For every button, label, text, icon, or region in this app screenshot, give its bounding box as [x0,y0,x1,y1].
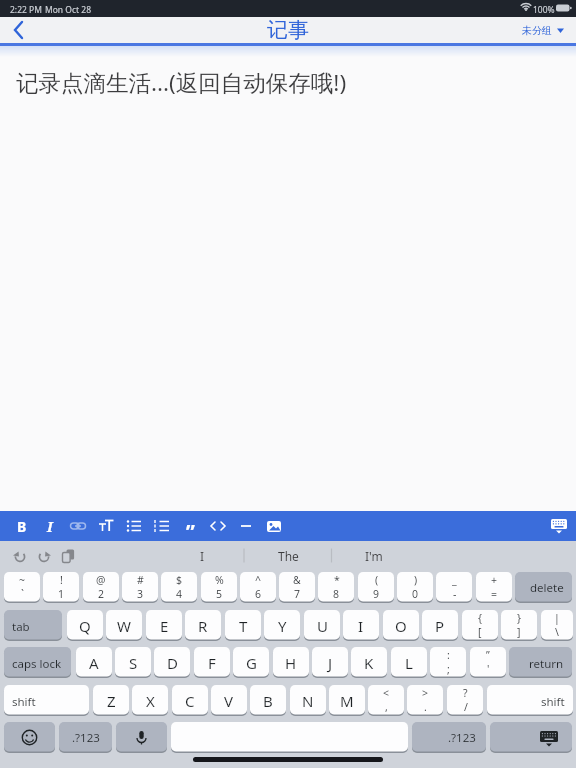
button[interactable]: G [233,647,269,678]
button[interactable] [205,513,231,539]
button[interactable]: B [9,513,35,539]
staticText: .?123 [448,730,476,746]
button[interactable]: & [279,572,315,603]
staticText: ^ [255,573,262,587]
button[interactable]: | [541,610,573,641]
button[interactable]: B [250,685,286,716]
staticText: Z [107,691,116,711]
button[interactable]: ! [43,572,79,603]
staticText: T [239,616,248,636]
staticText: L [405,653,413,673]
staticText: I [358,616,364,636]
button[interactable] [93,513,119,539]
button[interactable] [171,722,408,753]
button[interactable] [65,513,91,539]
button[interactable]: T [225,610,261,641]
staticText: R [198,616,208,636]
button[interactable]: ( [358,572,394,603]
staticText: 7 [294,587,301,601]
button[interactable]: # [122,572,158,603]
button[interactable]: L [391,647,427,678]
button[interactable]: : [430,647,466,678]
button[interactable] [121,513,147,539]
button[interactable]: M [329,685,365,716]
button[interactable]: Q [67,610,103,641]
button[interactable]: .?123 [59,722,112,753]
button[interactable]: return [509,647,572,678]
button[interactable]: U [304,610,340,641]
button[interactable]: X [132,685,168,716]
button[interactable]: J [312,647,348,678]
button[interactable]: > [407,685,443,716]
button[interactable]: @ [83,572,119,603]
button[interactable]: 未分组 [510,17,570,43]
button[interactable]: * [318,572,354,603]
staticText: X [146,691,155,711]
button[interactable]: caps lock [4,647,71,678]
staticText: _ [452,573,457,587]
button[interactable] [4,722,55,753]
button[interactable]: shift [4,685,89,716]
button[interactable]: _ [436,572,472,603]
staticText: .?123 [72,730,100,746]
button[interactable]: + [476,572,512,603]
staticText: ” [186,518,195,544]
button[interactable]: P [422,610,458,641]
button[interactable] [490,722,572,753]
button[interactable]: ~ [4,572,40,603]
button[interactable] [233,513,259,539]
button[interactable]: ) [397,572,433,603]
button[interactable]: C [172,685,208,716]
staticText: B [17,517,27,536]
button[interactable]: < [368,685,404,716]
staticText: delete [530,580,564,596]
staticText: tab [12,619,30,635]
button[interactable]: H [273,647,309,678]
button[interactable] [546,513,572,539]
button[interactable]: } [501,610,537,641]
button[interactable]: O [383,610,419,641]
button[interactable]: I [162,541,242,570]
button[interactable]: N [290,685,326,716]
button[interactable]: I'm [334,541,414,570]
staticText: H [285,653,297,673]
staticText: C [185,691,195,711]
button[interactable]: V [211,685,247,716]
button[interactable]: $ [161,572,197,603]
staticText: G [246,653,257,673]
button[interactable]: % [201,572,237,603]
button[interactable]: Y [264,610,300,641]
button[interactable]: Z [93,685,129,716]
button[interactable]: ^ [240,572,276,603]
button[interactable]: S [115,647,151,678]
button[interactable] [116,722,167,753]
button[interactable]: { [462,610,498,641]
button[interactable] [149,513,175,539]
button[interactable]: delete [515,572,572,603]
button[interactable]: E [146,610,182,641]
staticText: \ [555,625,559,639]
button[interactable]: W [106,610,142,641]
button[interactable] [261,513,287,539]
button[interactable] [6,17,36,43]
button[interactable]: shift [487,685,573,716]
button[interactable]: .?123 [412,722,486,753]
staticText: ; [447,662,450,676]
staticText: ~ [19,573,26,587]
button[interactable]: K [351,647,387,678]
button[interactable]: ? [447,685,483,716]
staticText: caps lock [12,656,62,672]
button[interactable]: R [185,610,221,641]
button[interactable]: A [76,647,112,678]
button[interactable]: I [37,513,63,539]
button[interactable]: ” [177,513,203,539]
button[interactable]: D [154,647,190,678]
button[interactable]: F [194,647,230,678]
button[interactable]: tab [4,610,62,641]
staticText: ) [414,573,418,587]
staticText: # [137,573,144,587]
button[interactable]: I [343,610,379,641]
button[interactable]: ” [470,647,506,678]
staticText: 2 [98,587,105,601]
button[interactable]: The [248,541,328,570]
